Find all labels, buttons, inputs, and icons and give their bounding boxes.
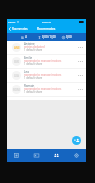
staticText: carrier [8,20,16,23]
staticText: 0,00 / 0,00 [42,35,56,39]
staticText: roommate to manage invoices [24,87,62,90]
staticText: 6:09 PM [42,20,51,23]
staticText: 1 default share [24,48,43,51]
staticText: Lea [24,70,29,73]
button[interactable]: EMI [7,55,86,68]
button[interactable]: More options [76,71,85,80]
button[interactable]: ANE [7,41,86,54]
staticText: Roommates [12,27,28,31]
button[interactable]: ROM [7,83,86,96]
button[interactable]: More options [76,57,85,66]
staticText: 0,00 [66,35,72,39]
staticText: 1 default share [24,90,43,93]
staticText: roommate to manage invoices [24,59,62,62]
button[interactable]: Add roommate [72,136,81,145]
button[interactable]: More options [76,85,85,94]
button[interactable]: Expenses [7,149,26,162]
staticText: roommate to manage invoices [24,73,62,76]
staticText: entries deducted [24,45,45,48]
button[interactable]: Roommates [46,149,66,162]
staticText: Emilie [24,56,33,59]
staticText: EMI [14,60,20,64]
staticText: 1 default share [24,62,43,65]
button[interactable]: LEA [7,69,86,82]
staticText: 1 default share [24,76,43,79]
staticText: ANE [14,46,20,50]
button[interactable]: Balance [26,149,46,162]
button[interactable]: Settings [66,149,86,162]
staticText: Roommates [37,27,56,31]
button[interactable]: More options [76,43,85,52]
staticText: Romain [24,84,35,87]
staticText: LEA [14,74,19,78]
button[interactable]: Back [7,24,30,33]
staticText: ROM [13,88,20,92]
staticText: 4 [25,35,27,39]
staticText: Antoine [24,42,35,45]
